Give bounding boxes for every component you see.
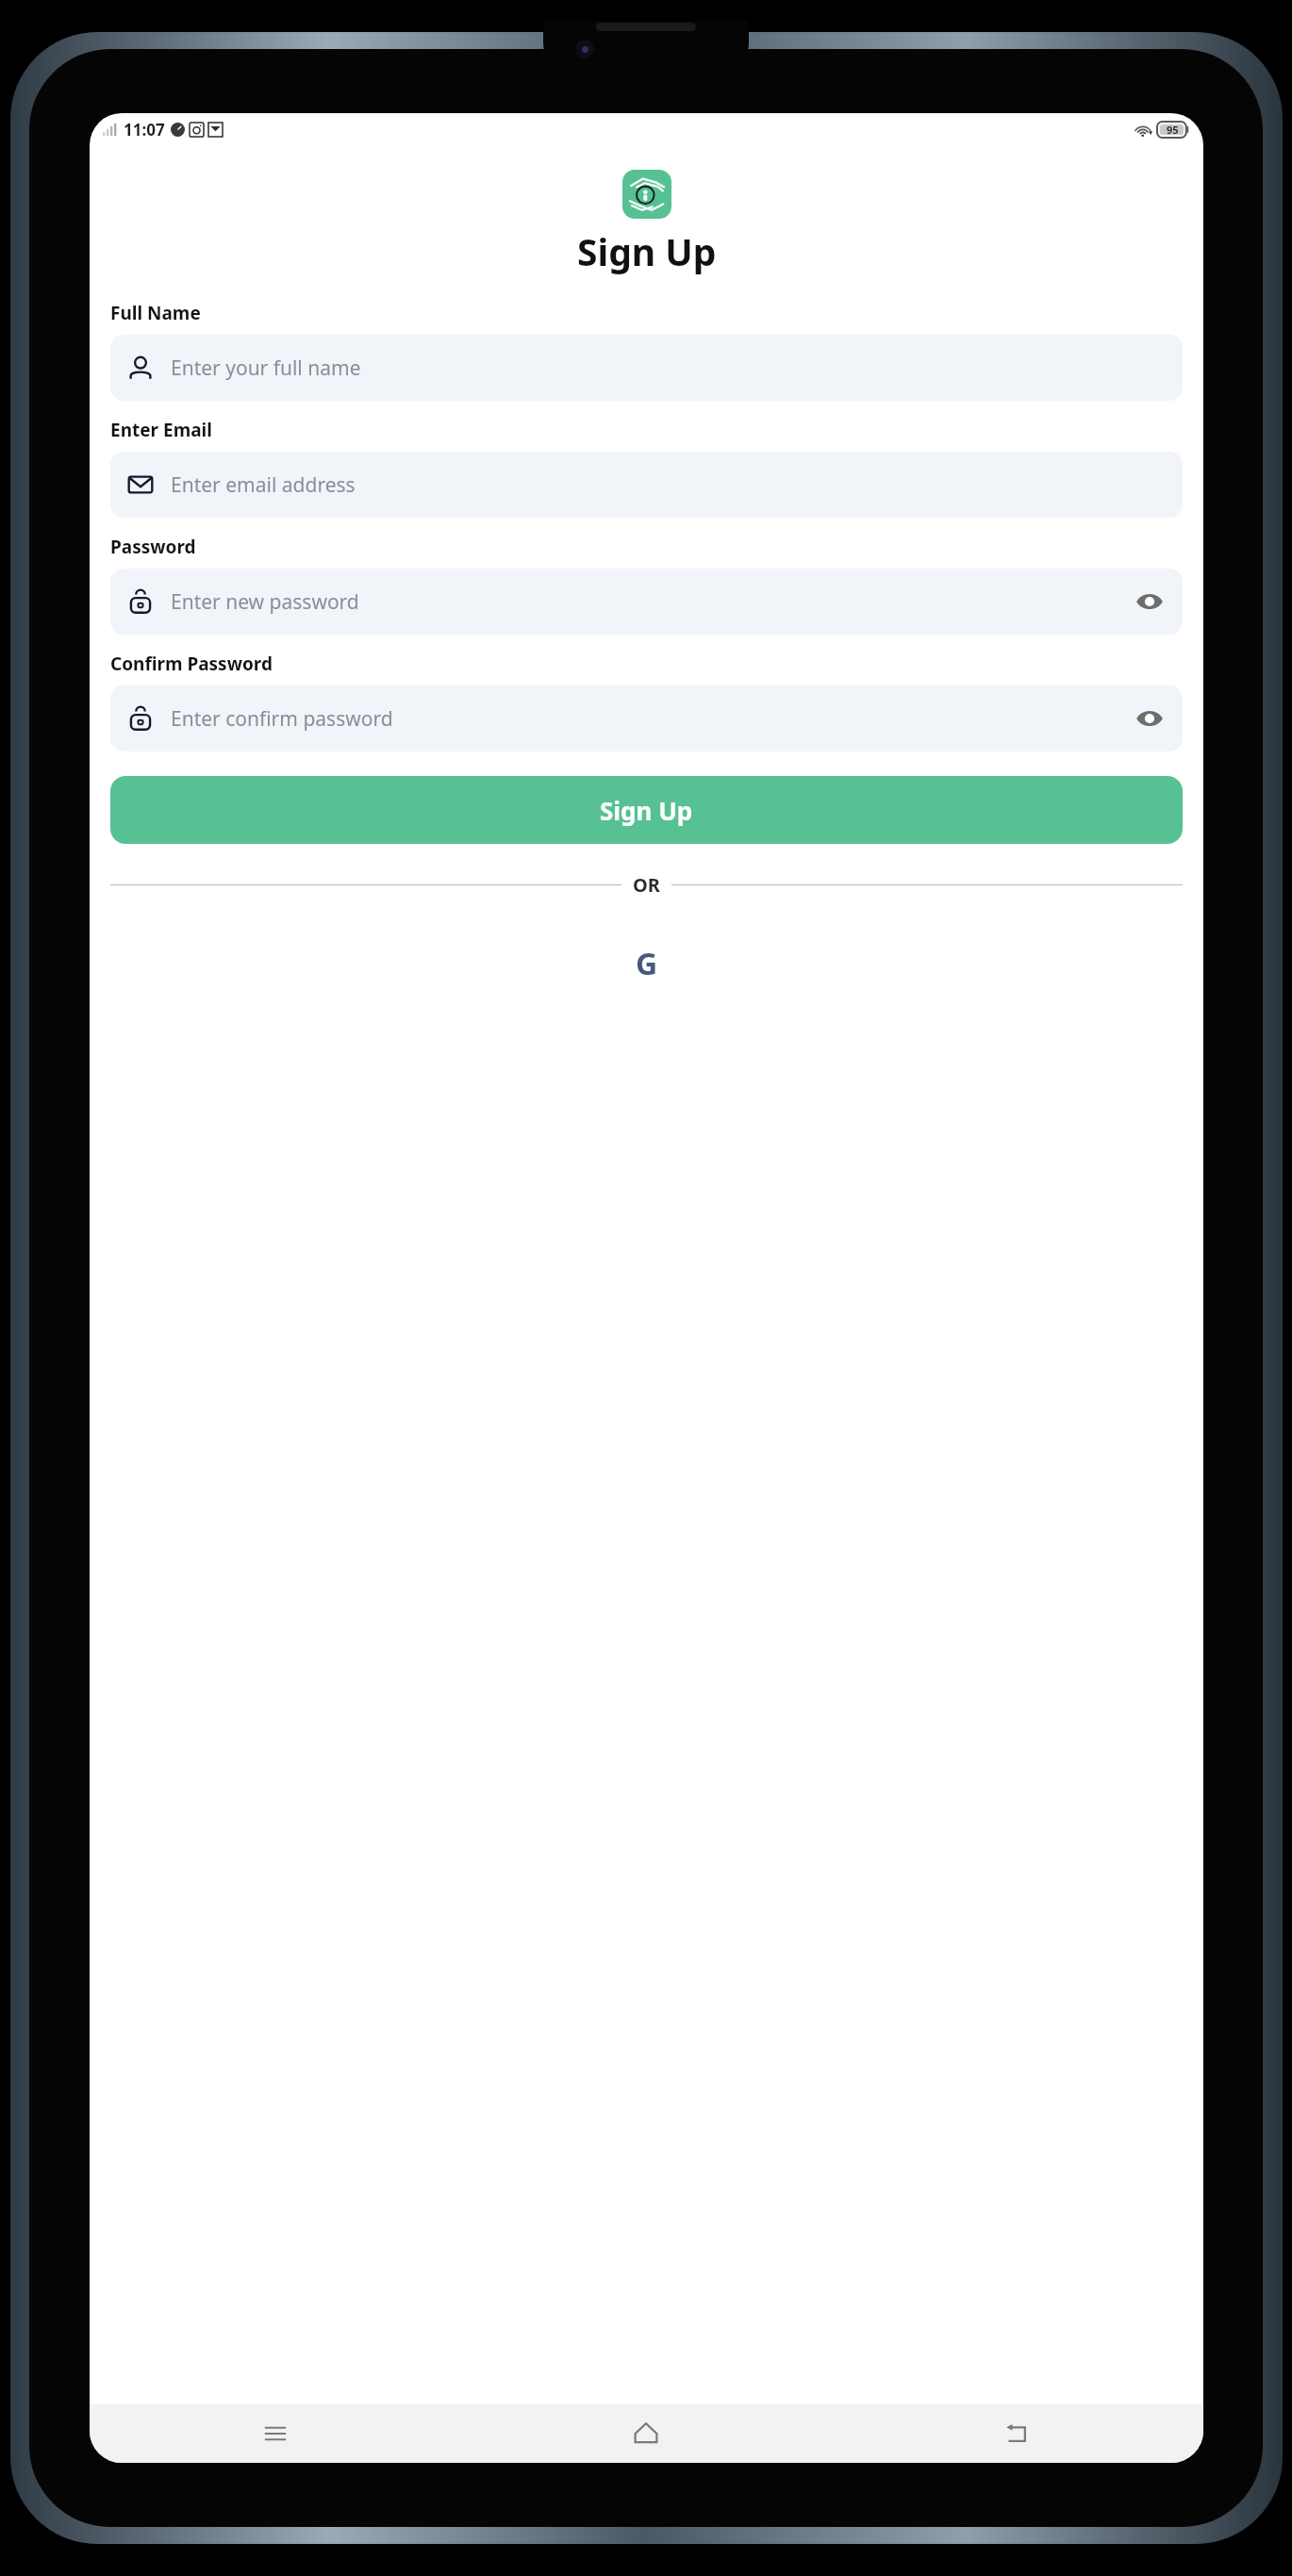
staticText: Sign Up bbox=[600, 794, 693, 827]
staticText: Confirm Password bbox=[110, 652, 273, 676]
button[interactable]: Enter new password bbox=[110, 569, 1183, 635]
button[interactable]: Back bbox=[832, 2404, 1203, 2463]
other: App logo bbox=[622, 170, 671, 219]
staticText: 95 bbox=[1167, 123, 1179, 137]
staticText: Sign Up bbox=[577, 226, 717, 276]
button[interactable]: Enter your full name bbox=[110, 335, 1183, 401]
button[interactable]: Enter email address bbox=[110, 452, 1183, 518]
staticText: Enter Email bbox=[110, 418, 212, 442]
staticText: Enter new password bbox=[171, 588, 1134, 616]
staticText: Enter confirm password bbox=[171, 705, 1134, 733]
staticText: Enter email address bbox=[171, 471, 1166, 499]
staticText: G bbox=[636, 943, 658, 984]
button[interactable]: Toggle password visibility bbox=[1134, 586, 1166, 618]
button[interactable]: Toggle password visibility bbox=[1134, 702, 1166, 735]
button[interactable]: Recent apps bbox=[90, 2404, 460, 2463]
staticText: Full Name bbox=[110, 301, 201, 325]
staticText: OR bbox=[633, 872, 660, 898]
staticText: Enter your full name bbox=[171, 355, 1166, 382]
button[interactable]: Sign up with Google bbox=[614, 922, 680, 1013]
staticText: 11:07 bbox=[124, 119, 165, 140]
button[interactable]: Enter confirm password bbox=[110, 685, 1183, 751]
button[interactable]: Sign Up bbox=[110, 776, 1183, 844]
staticText: Password bbox=[110, 535, 196, 559]
button[interactable]: Home bbox=[460, 2404, 832, 2463]
